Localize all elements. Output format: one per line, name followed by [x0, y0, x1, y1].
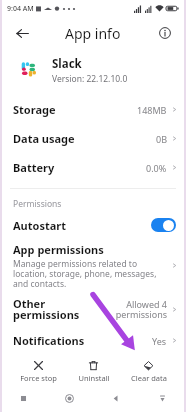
- staticText: Data usage: [13, 131, 75, 146]
- button[interactable]: Other permissions: [0, 293, 186, 326]
- staticText: 148MB: [137, 104, 167, 116]
- button[interactable]: Notifications: [0, 326, 186, 355]
- staticText: Allowed 4 permissions: [115, 298, 167, 321]
- staticText: 9:04 AM: [7, 4, 34, 14]
- button[interactable]: Home: [46, 385, 92, 412]
- staticText: 0.0%: [146, 162, 167, 174]
- staticText: Other permissions: [13, 296, 80, 323]
- button[interactable]: Slack: [0, 49, 186, 91]
- staticText: App permissions: [13, 242, 104, 257]
- staticText: Manage permissions related to location, …: [13, 258, 157, 289]
- button[interactable]: Recents: [0, 385, 46, 412]
- button[interactable]: Storage: [0, 95, 186, 124]
- staticText: Storage: [13, 102, 56, 117]
- button[interactable]: Autostart toggle: [151, 218, 176, 232]
- staticText: Version: 22.12.10.0: [52, 73, 128, 85]
- staticText: Yes: [152, 335, 167, 347]
- button[interactable]: Back: [92, 385, 139, 412]
- button[interactable]: Data usage: [0, 124, 186, 153]
- staticText: Notifications: [13, 333, 85, 348]
- staticText: 0B: [156, 133, 167, 145]
- staticText: Permissions: [13, 198, 62, 210]
- button[interactable]: App permissions: [0, 239, 186, 293]
- staticText: App info: [65, 24, 121, 43]
- button[interactable]: About: [154, 22, 176, 44]
- button[interactable]: Force stop: [10, 360, 66, 383]
- button[interactable]: Hide keyboard: [139, 385, 186, 412]
- button[interactable]: Uninstall: [66, 360, 121, 383]
- button[interactable]: Clear data: [121, 360, 176, 383]
- button[interactable]: Battery: [0, 153, 186, 182]
- staticText: Slack: [52, 56, 82, 72]
- staticText: Autostart: [13, 218, 66, 233]
- staticText: Clear data: [131, 373, 167, 383]
- staticText: Battery: [13, 160, 55, 175]
- staticText: Uninstall: [78, 373, 110, 383]
- button[interactable]: Back: [10, 21, 34, 45]
- button[interactable]: Autostart: [0, 211, 186, 239]
- staticText: Force stop: [20, 373, 57, 383]
